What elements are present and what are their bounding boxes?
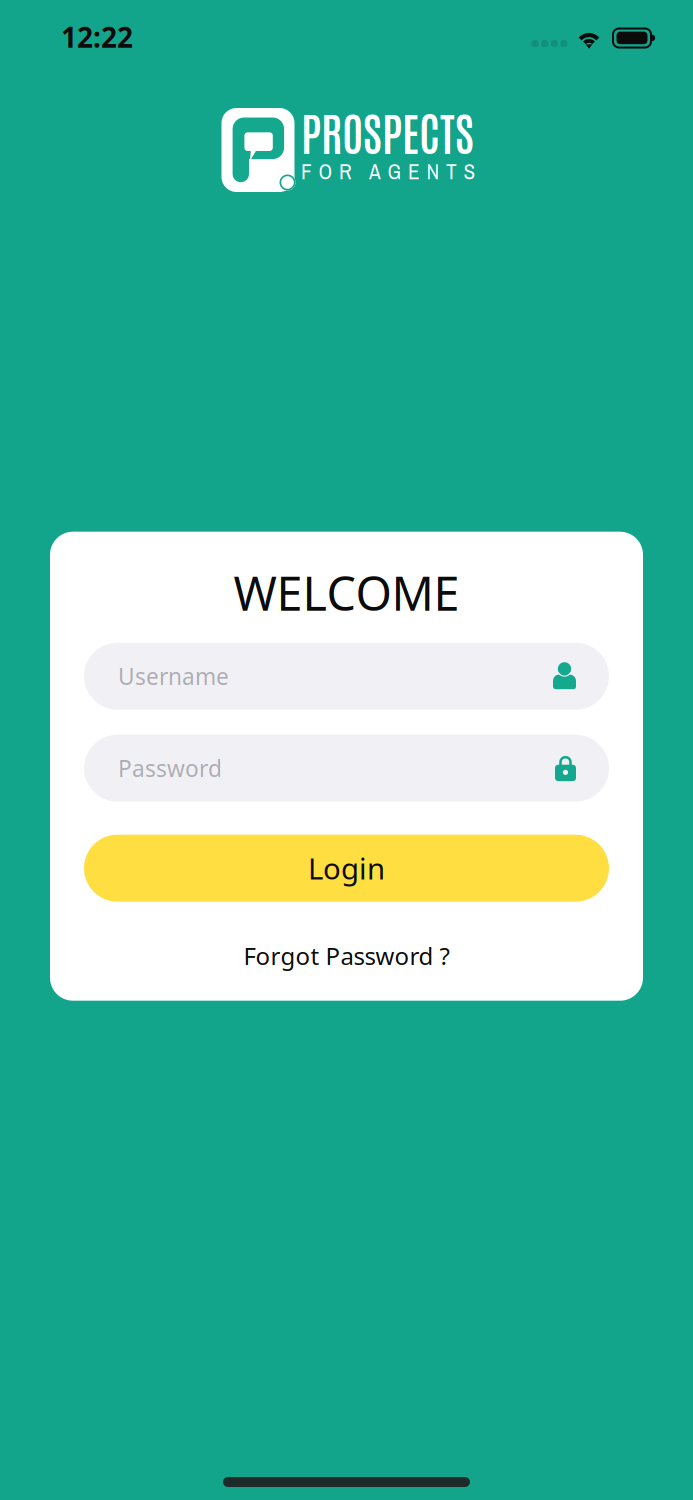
staticText: Forgot Password ? <box>243 940 449 972</box>
button[interactable]: Forgot Password ? <box>196 943 496 969</box>
staticText: Password <box>118 753 222 783</box>
button[interactable]: Password <box>84 735 609 802</box>
button[interactable]: Login <box>84 835 609 902</box>
staticText: WELCOME <box>233 562 459 624</box>
staticText: Username <box>118 661 229 691</box>
staticText: 12:22 <box>61 18 133 56</box>
staticText: PROSPECTS <box>301 102 474 160</box>
button[interactable]: Username <box>84 643 609 710</box>
staticText: Login <box>308 849 385 888</box>
staticText: FOR AGENTS <box>301 157 475 186</box>
